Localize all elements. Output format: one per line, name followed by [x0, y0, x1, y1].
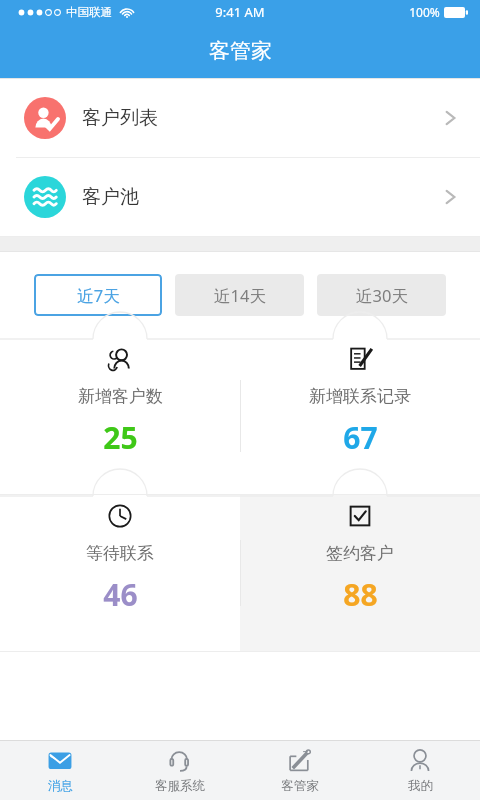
button[interactable]: 近14天: [175, 274, 304, 316]
staticText: 100%: [409, 4, 440, 20]
staticText: 客服系统: [155, 778, 205, 794]
button[interactable]: 等待联系: [0, 495, 240, 651]
staticText: 等待联系: [86, 543, 154, 564]
button[interactable]: 消息: [0, 741, 120, 800]
staticText: 88: [343, 574, 378, 615]
staticText: 25: [103, 417, 138, 458]
button[interactable]: 近7天: [34, 274, 162, 316]
staticText: 新增客户数: [78, 386, 163, 407]
staticText: 近30天: [356, 284, 408, 307]
staticText: 46: [103, 574, 138, 615]
staticText: 客户池: [82, 185, 139, 209]
staticText: 67: [343, 417, 378, 458]
button[interactable]: 新增客户数: [0, 338, 240, 494]
staticText: 消息: [48, 778, 73, 794]
button[interactable]: 客户列表: [0, 79, 480, 157]
staticText: 客管家: [209, 38, 272, 64]
staticText: 9:41 AM: [215, 3, 265, 21]
button[interactable]: 客户池: [0, 158, 480, 236]
button[interactable]: 签约客户: [240, 495, 480, 651]
button[interactable]: 新增联系记录: [240, 338, 480, 494]
staticText: 近7天: [77, 284, 120, 307]
staticText: 中国联通: [66, 5, 112, 19]
staticText: 客户列表: [82, 106, 158, 130]
button[interactable]: 客服系统: [120, 741, 240, 800]
button[interactable]: 我的: [360, 741, 480, 800]
staticText: 新增联系记录: [309, 386, 411, 407]
staticText: 签约客户: [326, 543, 394, 564]
staticText: 我的: [408, 778, 433, 794]
button[interactable]: 近30天: [317, 274, 446, 316]
staticText: 近14天: [214, 284, 266, 307]
button[interactable]: 客管家: [240, 741, 360, 800]
staticText: 客管家: [281, 778, 319, 794]
